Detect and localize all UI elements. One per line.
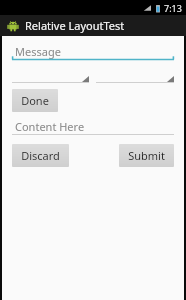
staticText: Discard <box>21 148 60 163</box>
staticText: 7:13 <box>164 2 182 14</box>
staticText: Submit <box>128 148 165 163</box>
button[interactable]: Done <box>21 93 49 108</box>
button[interactable]: Submit <box>128 148 165 163</box>
staticText: Content Here <box>15 119 85 134</box>
staticText: Relative LayoutTest <box>25 18 125 33</box>
staticText: Done <box>21 93 49 108</box>
button[interactable]: Dropdown <box>96 70 174 84</box>
button[interactable]: Message <box>12 43 174 63</box>
button[interactable]: Dropdown <box>12 70 89 84</box>
button[interactable]: Content Here <box>12 118 174 138</box>
button[interactable]: Discard <box>21 148 60 163</box>
staticText: Message <box>15 44 61 59</box>
